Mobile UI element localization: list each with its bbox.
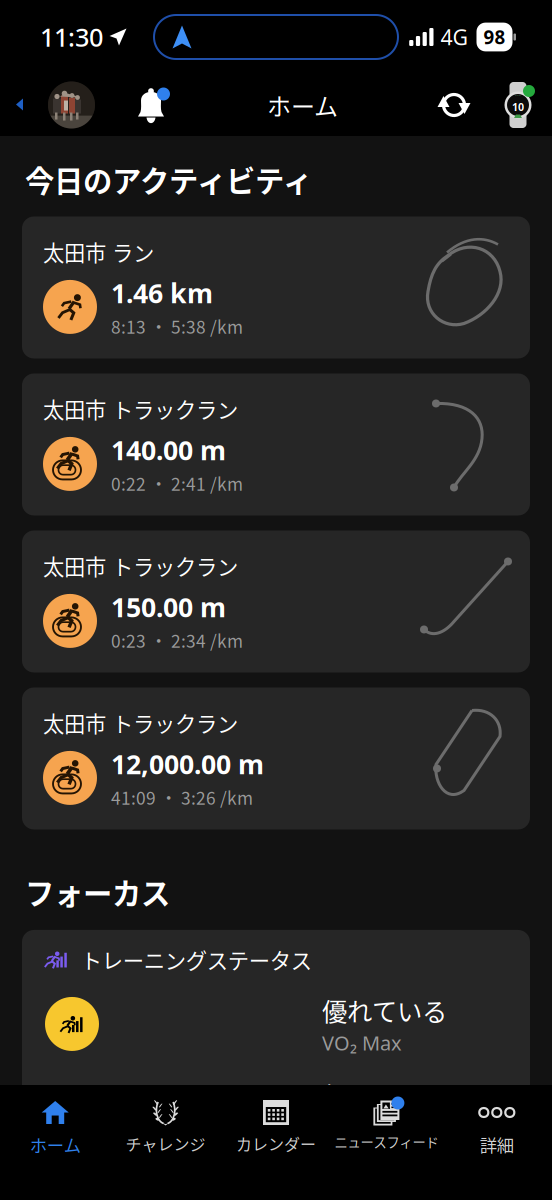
button[interactable]: 同期 <box>436 89 472 121</box>
staticText: フォーカス <box>25 870 170 913</box>
button[interactable]: 太田市 <box>22 687 530 829</box>
staticText: トラックラン <box>112 393 238 424</box>
button[interactable]: 太田市 <box>22 373 530 515</box>
staticText: チャレンジ <box>126 1132 206 1155</box>
staticText: トラックラン <box>112 550 238 581</box>
button[interactable]: 戻る <box>16 98 48 111</box>
staticText: 0:22 ・ 2:41 /km <box>111 471 243 496</box>
staticText: 詳細 <box>480 1132 514 1157</box>
button[interactable]: 太田市 <box>22 530 530 672</box>
button[interactable]: デバイス <box>500 81 536 129</box>
staticText: ニュースフィード <box>334 1132 438 1151</box>
staticText: ラン <box>112 236 154 267</box>
staticText: 8:13 ・ 5:38 /km <box>111 314 243 339</box>
button[interactable]: ニュースフィード <box>331 1085 442 1200</box>
staticText: カレンダー <box>236 1132 316 1155</box>
staticText: 1.46 km <box>111 275 213 311</box>
staticText: 太田市 <box>43 393 106 424</box>
button[interactable]: 太田市 <box>22 216 530 358</box>
staticText: ホーム <box>30 1132 81 1157</box>
staticText: 98 <box>483 25 505 49</box>
staticText: 太田市 <box>43 236 106 267</box>
staticText: 低 <box>322 1076 347 1113</box>
button[interactable]: プロフィール <box>48 81 95 128</box>
staticText: HRV ステータス <box>322 1114 466 1143</box>
staticText: VO₂ Max <box>322 1029 402 1056</box>
staticText: 優れている <box>322 992 447 1028</box>
staticText: 今日のアクティビティ <box>25 158 312 200</box>
staticText: 12,000.00 m <box>111 746 264 782</box>
button[interactable]: ホーム <box>0 1085 110 1200</box>
button[interactable]: 詳細 <box>442 1085 552 1200</box>
button[interactable]: トレーニングステータス <box>22 930 530 1200</box>
staticText: 0:23 ・ 2:34 /km <box>111 628 243 653</box>
staticText: 11:30 <box>40 20 103 54</box>
staticText: 太田市 <box>43 707 106 738</box>
staticText: ··· <box>515 91 521 100</box>
button[interactable]: 通知 <box>133 86 169 124</box>
staticText: ホーム <box>267 88 338 122</box>
staticText: 41:09 ・ 3:26 /km <box>111 785 253 810</box>
staticText: 4G <box>440 23 468 51</box>
staticText: トラックラン <box>112 707 238 738</box>
staticText: 太田市 <box>43 550 106 581</box>
button[interactable]: チャレンジ <box>110 1085 221 1200</box>
staticText: 140.00 m <box>111 432 226 468</box>
button[interactable]: カレンダー <box>221 1085 331 1200</box>
staticText: トレーニングステータス <box>81 944 312 975</box>
staticText: 10 <box>512 100 524 114</box>
staticText: 150.00 m <box>111 589 226 625</box>
